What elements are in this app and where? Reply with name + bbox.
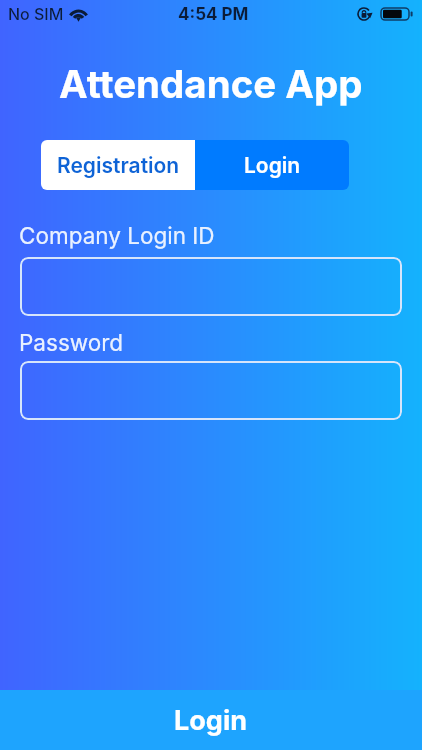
staticText: Attendance App (59, 61, 363, 108)
button[interactable] (20, 257, 402, 316)
button[interactable] (20, 361, 402, 420)
staticText: Login (174, 704, 248, 737)
other: Battery (380, 7, 413, 21)
button[interactable]: Registration (41, 140, 195, 190)
button[interactable]: Login (195, 140, 349, 190)
staticText: Password (19, 329, 124, 356)
staticText: Registration (57, 153, 180, 178)
staticText: 4:54 PM (178, 4, 249, 25)
staticText: No SIM (8, 4, 64, 23)
staticText: Company Login ID (19, 222, 215, 249)
other: Rotation lock (357, 7, 371, 21)
staticText: Login (244, 153, 301, 178)
button[interactable]: Login (0, 690, 422, 750)
other: Wi-Fi (68, 6, 89, 21)
